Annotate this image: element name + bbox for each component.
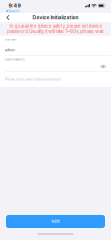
button[interactable]: Back to Search [5,9,20,13]
staticText: User name [5,38,16,41]
staticText: Next [51,219,59,224]
staticText: Please enter email address (optional) [5,78,61,81]
staticText: Search [8,9,19,13]
button[interactable]: Next [6,215,105,228]
staticText: 9:49 [8,2,20,9]
staticText: To guarantee device safety, please set d… [7,23,104,34]
button[interactable]: User name [0,36,111,55]
staticText: Device Initialization [32,14,78,20]
button[interactable]: Please enter email address (optional) [0,72,111,87]
button[interactable]: Back [2,13,13,22]
staticText: Device Password [5,58,25,61]
button[interactable]: Device Password [0,55,111,71]
staticText: admin [5,48,15,52]
